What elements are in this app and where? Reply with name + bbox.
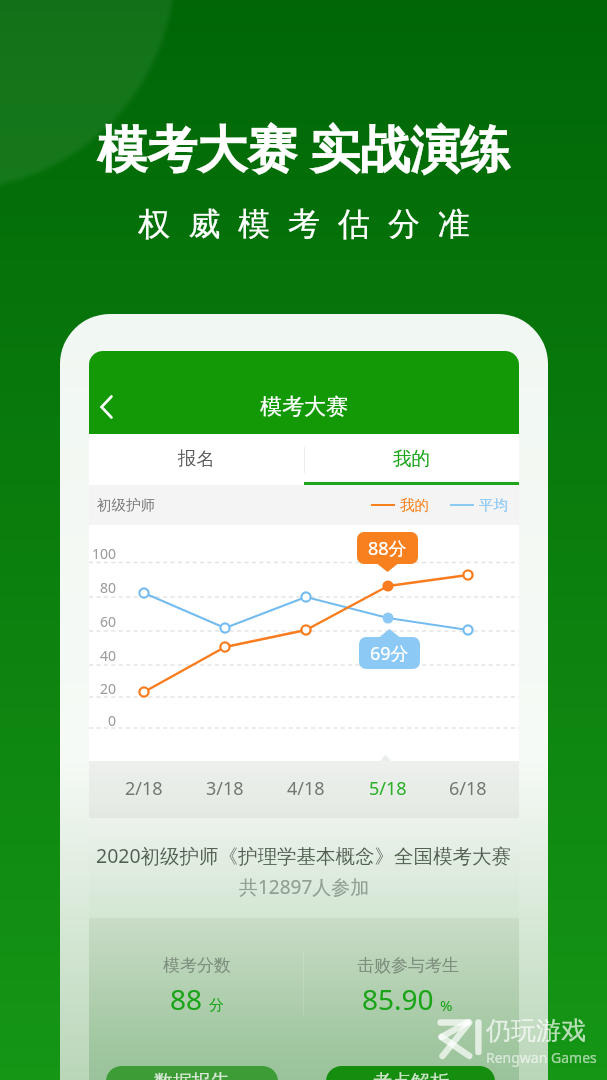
staticText: 20 <box>100 679 117 698</box>
staticText: 3/18 <box>206 776 244 801</box>
staticText: 共12897人参加 <box>239 874 370 900</box>
staticText: 击败参与考生 <box>357 955 459 976</box>
button[interactable]: 报名 <box>89 434 304 485</box>
staticText: 我的 <box>393 447 430 470</box>
staticText: 69分 <box>370 641 409 666</box>
staticText: 100 <box>92 544 117 563</box>
staticText: 模考大赛 <box>260 393 348 421</box>
staticText: 40 <box>100 646 117 665</box>
staticText: 初级护师 <box>97 496 155 514</box>
button[interactable]: 2/18 <box>114 761 174 818</box>
staticText: 我的 <box>400 496 429 514</box>
staticText: 0 <box>108 711 117 730</box>
button[interactable]: 3/18 <box>195 761 255 818</box>
button[interactable]: 4/18 <box>276 761 336 818</box>
button[interactable]: Back <box>90 386 124 428</box>
button[interactable]: 考点解析 <box>326 1066 495 1080</box>
staticText: 2020初级护师《护理学基本概念》全国模考大赛 <box>96 842 512 869</box>
staticText: 数据报告 <box>154 1070 230 1080</box>
staticText: 平均 <box>479 496 508 514</box>
staticText: 分 <box>209 996 224 1015</box>
staticText: 60 <box>100 612 117 631</box>
button[interactable]: 6/18 <box>438 761 498 818</box>
staticText: 80 <box>100 578 117 597</box>
staticText: 权威模考估分准 <box>138 204 488 244</box>
staticText: 6/18 <box>449 776 487 801</box>
staticText: 85.90 <box>362 980 434 1018</box>
staticText: 仍玩游戏 <box>486 1015 586 1046</box>
staticText: 考点解析 <box>373 1070 449 1080</box>
staticText: 88 <box>170 980 203 1018</box>
staticText: 模考大赛 实战演练 <box>97 114 510 182</box>
button[interactable]: 数据报告 <box>106 1066 278 1080</box>
staticText: 5/18 <box>369 776 407 801</box>
button[interactable]: 5/18 <box>358 761 418 818</box>
staticText: 模考分数 <box>163 955 231 976</box>
button[interactable]: 我的 <box>304 434 519 485</box>
staticText: 4/18 <box>287 776 325 801</box>
staticText: Rengwan Games <box>486 1048 597 1067</box>
staticText: % <box>440 995 453 1015</box>
staticText: 2/18 <box>125 776 163 801</box>
staticText: 报名 <box>178 447 215 470</box>
staticText: 88分 <box>368 536 407 561</box>
